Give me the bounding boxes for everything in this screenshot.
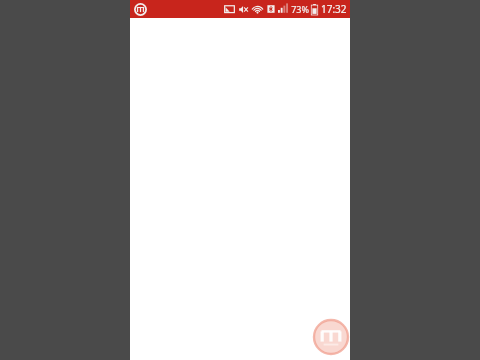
button[interactable]: Notification — [134, 3, 147, 16]
staticText: 17:32 — [321, 2, 347, 16]
staticText: 73% — [291, 3, 309, 15]
